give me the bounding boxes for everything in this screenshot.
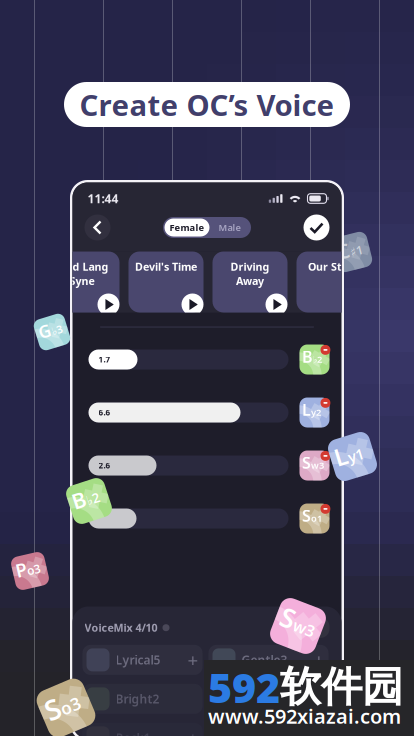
staticText: 软件园 [280,662,403,712]
staticText: L [302,399,311,420]
staticText: Auld Lang [55,259,108,274]
staticText: 6.6 [98,407,110,418]
staticText: S [302,505,311,526]
staticText: 1.7 [98,354,110,365]
button[interactable]: Deep2 [208,684,328,714]
button[interactable]: Driving [212,251,287,312]
staticText: y1 [348,446,364,466]
staticText: Gentle3 [241,652,287,668]
staticText: 11:44 [87,190,118,206]
staticText: ♭2 [87,491,101,509]
button[interactable]: Airy4 [208,723,328,736]
staticText: o1 [311,512,322,524]
staticText: Female [169,221,204,234]
staticText: Syne [69,274,94,288]
staticText: P [16,555,27,580]
staticText: Create OC’s Voice [79,85,334,124]
staticText: B [302,346,313,367]
staticText: 2.6 [98,460,110,471]
button[interactable]: Female [164,218,209,236]
staticText: Deep2 [241,691,279,707]
staticText: S [278,604,293,639]
staticText: o3 [60,696,81,719]
button[interactable]: Bright2 [82,684,202,714]
button[interactable]: L [299,397,329,427]
button[interactable]: Devil's Time [128,251,203,312]
staticText: Male [218,221,240,234]
button[interactable]: B [299,344,329,374]
staticText: y2 [311,406,321,418]
staticText: 592 [208,660,280,714]
staticText: B [73,483,87,511]
button[interactable]: S [299,450,329,480]
button[interactable]: Lyrical5 [82,645,202,675]
staticText: + [313,686,324,711]
staticText: www.592xiazai.com [208,703,401,729]
staticText: L [335,437,348,469]
button[interactable]: Gentle3 [208,645,328,675]
staticText: Our Story [308,259,360,274]
button[interactable]: Rock1 [82,723,202,736]
staticText: w3 [311,459,324,471]
staticText: ♭2 [313,353,322,365]
staticText: Bright2 [115,691,159,707]
button[interactable]: Auld Lang [44,251,119,312]
staticText: ♭3 [52,324,63,338]
staticText: S [302,452,311,473]
button[interactable]: Confirm [303,214,329,240]
staticText: Random [282,621,320,634]
button[interactable]: Our Story [296,251,371,312]
staticText: Devil's Time [135,259,197,274]
staticText: + [187,647,198,672]
staticText: Lyrical5 [115,652,160,668]
staticText: Driving [230,259,269,274]
staticText: w3 [293,615,315,636]
button[interactable]: S [299,503,329,533]
staticText: G [39,317,52,340]
staticText: C [337,235,350,262]
staticText: Rock1 [115,730,150,736]
button[interactable]: Back [84,214,110,240]
staticText: S [45,685,60,722]
staticText: Away [236,274,264,288]
staticText: VoiceMix 4/10 [84,621,157,635]
button[interactable]: Male [209,218,249,236]
staticText: + [313,647,324,672]
button[interactable]: Random [273,617,329,638]
staticText: ♯1 [350,244,363,260]
staticText: o3 [27,562,41,578]
